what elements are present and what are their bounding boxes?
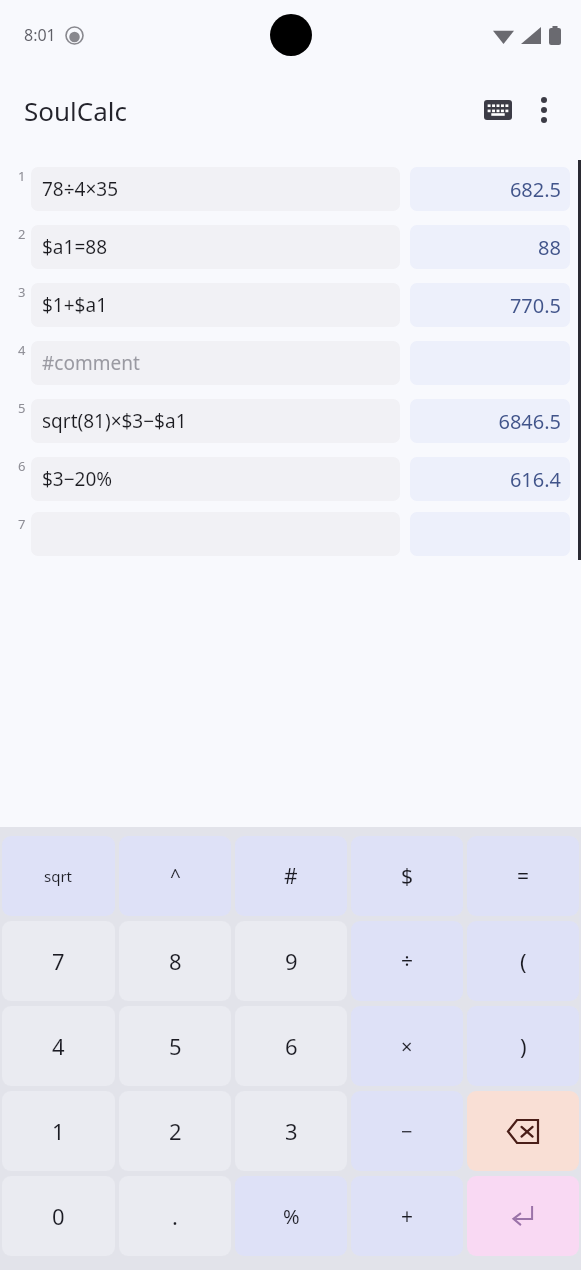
- staticText: 3: [285, 1116, 298, 1146]
- staticText: 78÷4×35: [42, 176, 119, 202]
- staticText: 6846.5: [498, 408, 561, 435]
- staticText: 8:01: [24, 24, 56, 46]
- button[interactable]: ×: [351, 1006, 463, 1086]
- button[interactable]: 7: [2, 921, 115, 1001]
- button[interactable]: 4: [0, 334, 581, 392]
- staticText: 4: [18, 341, 26, 359]
- button[interactable]: 3: [235, 1091, 347, 1171]
- button[interactable]: $: [351, 836, 463, 916]
- button[interactable]: .: [119, 1176, 231, 1256]
- staticText: ÷: [401, 947, 414, 976]
- staticText: 682.5: [509, 176, 561, 203]
- button[interactable]: 6: [0, 450, 581, 508]
- staticText: 5: [18, 399, 26, 417]
- staticText: sqrt(81)×$3−$a1: [42, 408, 187, 434]
- staticText: 9: [285, 946, 298, 976]
- staticText: 8: [169, 946, 182, 976]
- staticText: 3: [18, 283, 26, 301]
- staticText: 616.4: [509, 466, 561, 493]
- staticText: ): [520, 1031, 527, 1061]
- staticText: 0: [52, 1201, 65, 1231]
- staticText: ^: [170, 863, 181, 889]
- button[interactable]: −: [351, 1091, 463, 1171]
- button[interactable]: 1: [0, 160, 581, 218]
- button[interactable]: 2: [119, 1091, 231, 1171]
- button[interactable]: 8: [119, 921, 231, 1001]
- staticText: 7: [52, 946, 65, 976]
- staticText: .: [172, 1201, 178, 1231]
- staticText: 2: [169, 1116, 182, 1146]
- button[interactable]: ^: [119, 836, 231, 916]
- staticText: $1+$a1: [42, 292, 107, 318]
- button[interactable]: (: [467, 921, 579, 1001]
- staticText: %: [283, 1203, 300, 1230]
- button[interactable]: More options: [521, 87, 567, 133]
- staticText: SoulCalc: [24, 93, 127, 128]
- staticText: ×: [401, 1033, 413, 1060]
- staticText: sqrt: [44, 866, 73, 886]
- staticText: 6: [285, 1031, 298, 1061]
- button[interactable]: 4: [2, 1006, 115, 1086]
- button[interactable]: Backspace: [467, 1091, 579, 1171]
- button[interactable]: ): [467, 1006, 579, 1086]
- button[interactable]: 1: [2, 1091, 115, 1171]
- button[interactable]: 0: [2, 1176, 115, 1256]
- button[interactable]: Enter: [467, 1176, 579, 1256]
- staticText: (: [520, 946, 527, 976]
- staticText: −: [401, 1118, 413, 1145]
- staticText: $3−20%: [42, 466, 113, 492]
- button[interactable]: sqrt: [2, 836, 115, 916]
- button[interactable]: ÷: [351, 921, 463, 1001]
- button[interactable]: Toggle keyboard: [475, 87, 521, 133]
- staticText: +: [401, 1202, 414, 1231]
- staticText: =: [517, 862, 530, 891]
- staticText: 4: [52, 1031, 65, 1061]
- staticText: 6: [18, 457, 26, 475]
- button[interactable]: 5: [0, 392, 581, 450]
- button[interactable]: 2: [0, 218, 581, 276]
- staticText: 7: [18, 515, 26, 533]
- button[interactable]: 3: [0, 276, 581, 334]
- staticText: 770.5: [509, 292, 561, 319]
- staticText: 88: [538, 234, 561, 261]
- button[interactable]: 5: [119, 1006, 231, 1086]
- staticText: 1: [52, 1116, 65, 1146]
- staticText: #: [284, 862, 298, 891]
- button[interactable]: #: [235, 836, 347, 916]
- button[interactable]: %: [235, 1176, 347, 1256]
- button[interactable]: 9: [235, 921, 347, 1001]
- staticText: $a1=88: [42, 234, 107, 260]
- staticText: #comment: [42, 350, 140, 376]
- button[interactable]: =: [467, 836, 579, 916]
- button[interactable]: +: [351, 1176, 463, 1256]
- staticText: 1: [18, 167, 26, 185]
- staticText: 5: [169, 1031, 182, 1061]
- staticText: $: [401, 862, 414, 891]
- button[interactable]: 6: [235, 1006, 347, 1086]
- staticText: 2: [18, 225, 26, 243]
- button[interactable]: 7: [0, 508, 581, 560]
